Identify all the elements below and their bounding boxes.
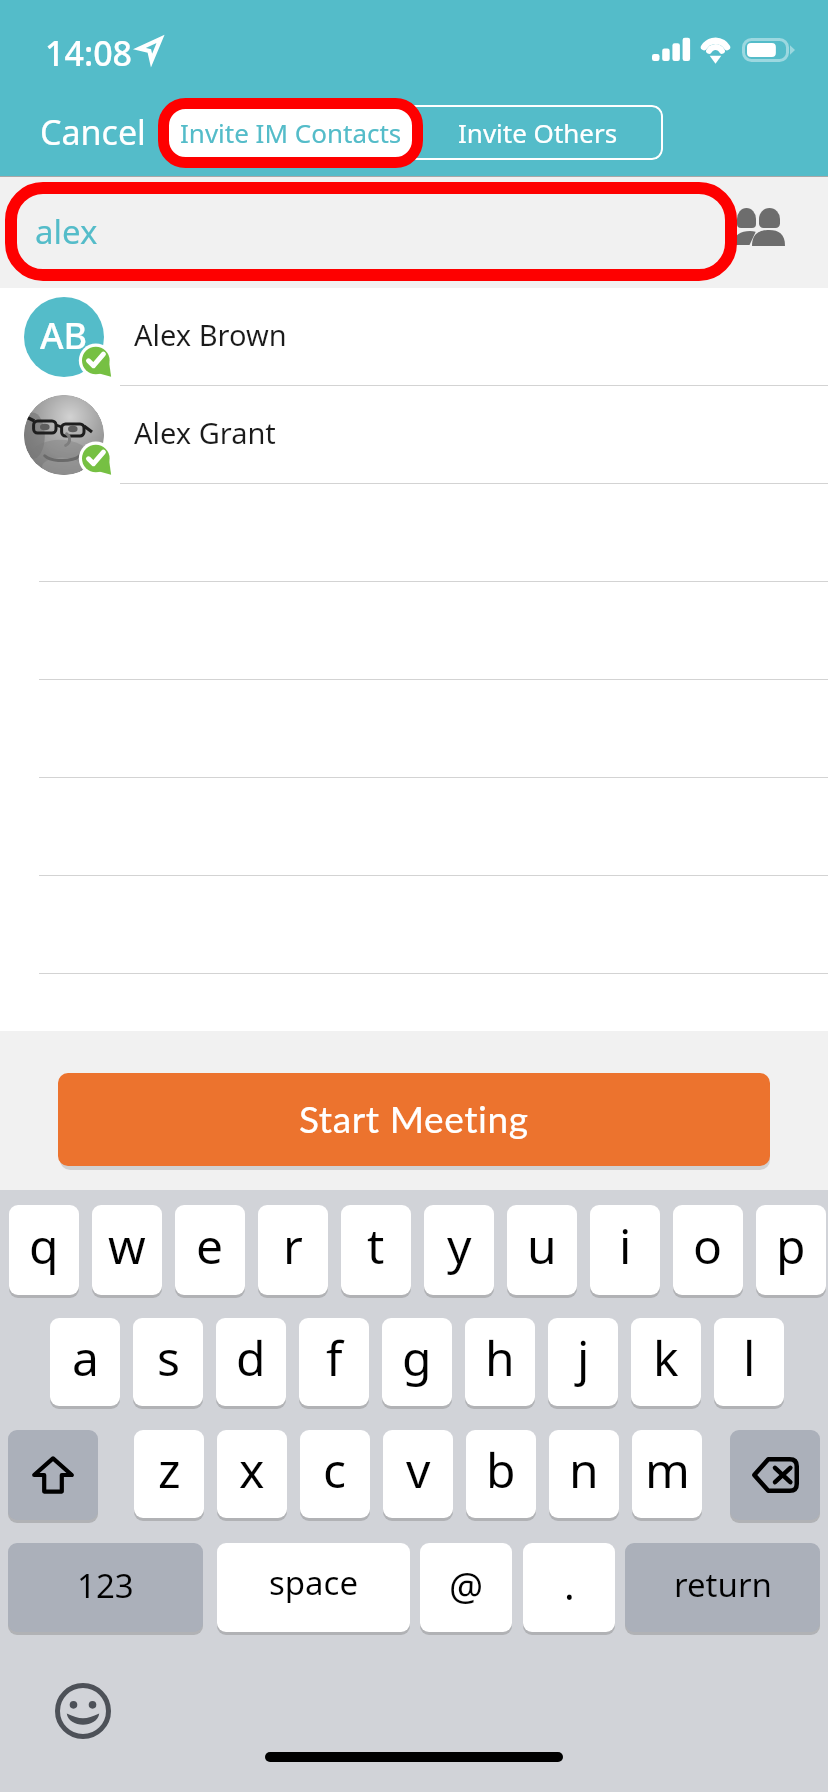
button[interactable]: h (465, 1318, 535, 1406)
button[interactable]: Emoji keyboard (55, 1683, 111, 1739)
button[interactable]: o (673, 1205, 743, 1295)
staticText: l (743, 1325, 756, 1390)
staticText: space (269, 1560, 359, 1605)
button[interactable]: Invite Others (413, 105, 663, 160)
staticText: Cancel (40, 109, 146, 155)
staticText: w (108, 1213, 146, 1278)
button[interactable]: e (175, 1205, 245, 1295)
staticText: a (72, 1325, 99, 1390)
button[interactable]: space (217, 1543, 410, 1632)
staticText: g (402, 1325, 432, 1390)
button[interactable]: t (341, 1205, 411, 1295)
staticText: 14:08 (45, 30, 133, 76)
staticText: p (776, 1213, 806, 1278)
staticText: AB (40, 311, 88, 360)
button[interactable]: g (382, 1318, 452, 1406)
button[interactable]: @ (420, 1543, 512, 1632)
staticText: Alex Brown (134, 315, 287, 354)
staticText: . (564, 1557, 575, 1611)
staticText: 123 (77, 1563, 134, 1608)
button[interactable]: m (632, 1430, 702, 1518)
button[interactable]: Delete (730, 1430, 820, 1520)
staticText: @ (449, 1559, 484, 1611)
staticText: Alex Grant (134, 413, 276, 452)
staticText: Start Meeting (299, 1096, 529, 1140)
button[interactable]: w (92, 1205, 162, 1295)
staticText: return (674, 1562, 772, 1607)
button[interactable]: Start Meeting (58, 1073, 770, 1166)
staticText: c (323, 1437, 347, 1502)
button[interactable]: p (756, 1205, 826, 1295)
button[interactable]: return (625, 1543, 820, 1632)
staticText: v (406, 1437, 431, 1502)
button[interactable]: Invite IM Contacts (168, 105, 413, 160)
button[interactable]: alex (8, 184, 733, 278)
button[interactable]: z (134, 1430, 204, 1518)
button[interactable]: l (714, 1318, 784, 1406)
staticText: s (157, 1325, 180, 1390)
button[interactable]: y (424, 1205, 494, 1295)
button[interactable]: r (258, 1205, 328, 1295)
button[interactable]: . (523, 1543, 615, 1632)
button[interactable]: AB (0, 288, 828, 386)
staticText: z (158, 1437, 181, 1502)
staticText: Invite IM Contacts (180, 115, 402, 150)
staticText: i (619, 1213, 632, 1278)
button[interactable]: Alex Grant (0, 386, 828, 484)
button[interactable]: 123 (8, 1543, 203, 1632)
staticText: t (367, 1213, 385, 1278)
button[interactable]: f (299, 1318, 369, 1406)
staticText: r (283, 1213, 303, 1278)
button[interactable]: j (548, 1318, 618, 1406)
staticText: k (653, 1325, 679, 1390)
button[interactable]: Contacts (737, 206, 787, 250)
button[interactable]: b (466, 1430, 536, 1518)
button[interactable]: n (549, 1430, 619, 1518)
button[interactable]: s (133, 1318, 203, 1406)
button[interactable]: c (300, 1430, 370, 1518)
staticText: m (645, 1437, 690, 1502)
staticText: j (577, 1325, 590, 1390)
button[interactable]: k (631, 1318, 701, 1406)
button[interactable]: x (217, 1430, 287, 1518)
button[interactable]: v (383, 1430, 453, 1518)
staticText: e (196, 1213, 224, 1278)
button[interactable]: d (216, 1318, 286, 1406)
button[interactable]: a (50, 1318, 120, 1406)
staticText: o (693, 1213, 723, 1278)
staticText: u (527, 1213, 557, 1278)
staticText: d (236, 1325, 266, 1390)
staticText: Invite Others (458, 115, 618, 150)
staticText: alex (35, 209, 98, 254)
button[interactable]: u (507, 1205, 577, 1295)
staticText: x (239, 1437, 265, 1502)
button[interactable]: q (9, 1205, 79, 1295)
staticText: h (485, 1325, 515, 1390)
staticText: b (486, 1437, 516, 1502)
staticText: n (569, 1437, 599, 1502)
button[interactable]: Cancel (34, 104, 152, 160)
staticText: y (447, 1213, 472, 1278)
staticText: f (326, 1325, 343, 1390)
staticText: q (29, 1213, 59, 1278)
button[interactable]: i (590, 1205, 660, 1295)
button[interactable]: Shift (8, 1430, 98, 1520)
